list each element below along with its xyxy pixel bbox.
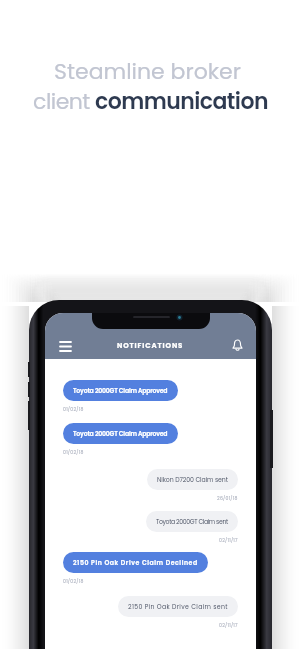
button[interactable]: Toyota 2000GT Claim sent — [146, 511, 238, 532]
staticText: Toyota 2000GT Claim Approved — [73, 386, 168, 395]
staticText: 01/02/18 — [63, 449, 84, 455]
staticText: Nikon D7200 Claim sent — [157, 475, 228, 484]
staticText: NOTIFICATIONS — [117, 341, 184, 351]
staticText: Steamline broker — [54, 56, 241, 87]
staticText: Toyota 2000GT Claim Approved — [73, 429, 168, 438]
staticText: Toyota 2000GT Claim sent — [156, 517, 228, 526]
button[interactable]: Notifications — [225, 333, 249, 357]
button[interactable]: 2150 Pin Oak Drive Claim sent — [118, 596, 238, 617]
staticText: 02/11/17 — [219, 622, 238, 628]
staticText: 26/01/18 — [217, 495, 238, 501]
staticText: 01/02/18 — [63, 406, 84, 412]
staticText: 2150 Pin Oak Drive Claim sent — [128, 602, 228, 611]
staticText: 01/02/18 — [63, 578, 84, 584]
staticText: client communication — [33, 86, 268, 117]
staticText: 2150 Pin Oak Drive Claim Declined — [73, 558, 198, 567]
button[interactable]: 2150 Pin Oak Drive Claim Declined — [63, 552, 208, 573]
button[interactable]: Toyota 2000GT Claim Approved — [63, 423, 178, 444]
button[interactable]: Toyota 2000GT Claim Approved — [63, 380, 178, 401]
button[interactable]: Open navigation menu — [52, 333, 78, 359]
staticText: 02/11/17 — [219, 537, 238, 543]
button[interactable]: Nikon D7200 Claim sent — [147, 469, 238, 490]
